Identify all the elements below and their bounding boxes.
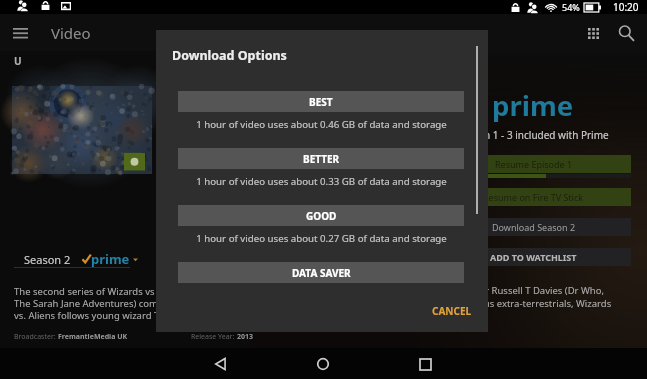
staticText: Download Options <box>172 47 287 64</box>
button[interactable]: Open navigation menu <box>6 19 34 47</box>
button[interactable]: Download Season 2 <box>436 218 631 236</box>
staticText: n 1 - 3 included with Prime <box>484 128 609 142</box>
staticText: Video <box>51 23 91 43</box>
staticText: DATA SAVER <box>292 266 351 280</box>
staticText: GOOD <box>306 209 337 223</box>
button[interactable]: CANCEL <box>428 300 476 322</box>
button[interactable]: Resume Episode 1 <box>436 155 631 173</box>
staticText: U <box>14 54 22 68</box>
button[interactable]: App grid <box>578 18 608 48</box>
staticText: Release Year: <box>191 332 237 342</box>
button[interactable]: Home <box>308 349 338 379</box>
staticText: CANCEL <box>432 304 472 318</box>
button[interactable]: Back <box>206 349 236 379</box>
staticText: prime <box>91 250 130 268</box>
button[interactable]: BETTER <box>178 148 464 169</box>
staticText: Download Season 2 <box>492 221 576 233</box>
staticText: FremantleMedia UK <box>58 332 128 342</box>
button[interactable]: Resume on Fire TV Stick <box>436 188 631 206</box>
button[interactable]: DATA SAVER <box>178 262 464 283</box>
staticText: Resume Episode 1 <box>495 158 573 170</box>
staticText: Resume on Fire TV Stick <box>483 191 584 203</box>
staticText: 10:20 <box>613 0 639 14</box>
staticText: 1 hour of video uses about 0.27 GB of da… <box>196 232 447 245</box>
button[interactable]: GOOD <box>178 205 464 226</box>
staticText: 1 hour of video uses about 0.46 GB of da… <box>196 118 447 131</box>
staticText: 1 hour of video uses about 0.33 GB of da… <box>196 175 447 188</box>
button[interactable]: Search <box>610 17 642 49</box>
button[interactable]: BEST <box>178 91 464 112</box>
staticText: The second series of Wizards vs The Sara… <box>14 285 160 322</box>
button[interactable]: ADD TO WATCHLIST <box>436 248 631 266</box>
staticText: BEST <box>309 95 333 109</box>
staticText: Season 2 <box>24 252 71 267</box>
staticText: Broadcaster: <box>14 332 58 342</box>
button[interactable]: Recent apps <box>410 349 440 379</box>
staticText: 54% <box>562 1 580 13</box>
staticText: 2013 <box>237 332 254 342</box>
staticText: ADD TO WATCHLIST <box>490 251 577 263</box>
staticText: prime <box>492 87 574 124</box>
staticText: BETTER <box>303 152 340 166</box>
staticText: riter Russell T Davies (Dr Who, ersus ex… <box>470 284 612 323</box>
